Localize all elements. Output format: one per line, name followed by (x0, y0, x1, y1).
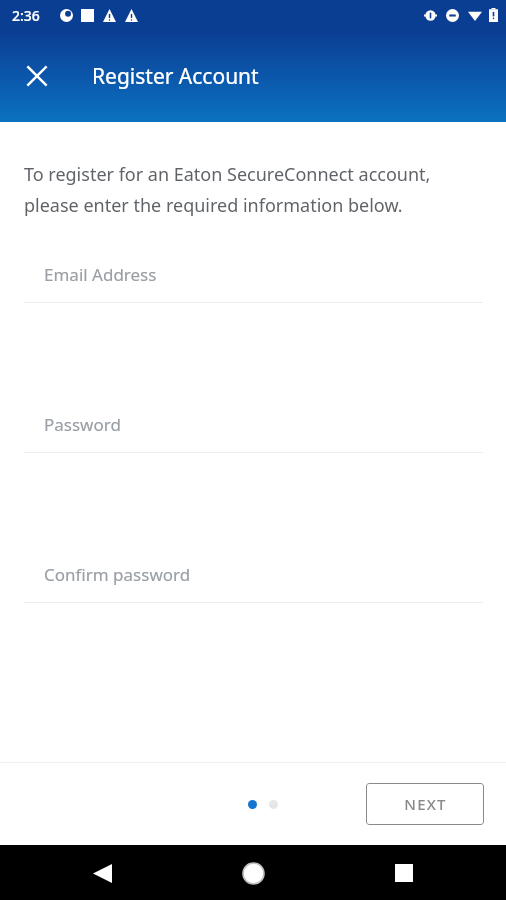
staticText: To register for an Eaton SecureConnect a… (24, 162, 478, 217)
button[interactable]: Home (229, 849, 277, 897)
staticText: Password (44, 413, 121, 436)
staticText: NEXT (404, 794, 447, 814)
button[interactable]: NEXT (366, 783, 484, 825)
button[interactable]: Close (13, 52, 61, 100)
button[interactable]: Confirm password (0, 563, 506, 603)
staticText: Confirm password (44, 563, 191, 586)
staticText: Email Address (44, 263, 157, 286)
staticText: Register Account (92, 62, 259, 91)
button[interactable]: Password (0, 413, 506, 453)
staticText: 2:36 (12, 6, 40, 25)
button[interactable]: Back (78, 849, 126, 897)
button[interactable]: Recent apps (380, 849, 428, 897)
button[interactable]: Email Address (0, 263, 506, 303)
